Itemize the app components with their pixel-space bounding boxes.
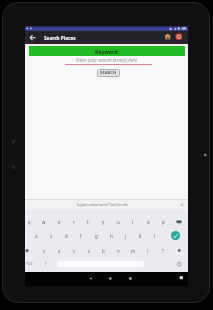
staticText: t xyxy=(87,219,89,225)
staticText: a xyxy=(35,233,38,239)
staticText: / xyxy=(45,261,47,267)
staticText: ? xyxy=(162,248,164,254)
button[interactable] xyxy=(104,273,116,285)
staticText: v xyxy=(88,248,91,254)
staticText: l xyxy=(154,233,156,239)
button[interactable] xyxy=(29,46,185,56)
staticText: j xyxy=(125,233,127,239)
button[interactable] xyxy=(25,31,188,44)
button[interactable] xyxy=(176,273,186,283)
staticText: g xyxy=(95,233,98,239)
staticText: p xyxy=(162,219,165,225)
staticText: k xyxy=(139,233,142,239)
staticText: h xyxy=(110,233,113,239)
staticText: c xyxy=(73,248,76,254)
staticText: SEARCH xyxy=(100,70,117,76)
staticText: d xyxy=(65,233,68,239)
staticText: Keyword: xyxy=(95,48,120,55)
staticText: z xyxy=(43,248,46,254)
button[interactable] xyxy=(27,32,38,43)
staticText: . xyxy=(153,260,155,266)
button[interactable] xyxy=(163,32,172,41)
staticText: n xyxy=(117,248,120,254)
staticText: Suggest contact names? Touch for info. xyxy=(77,203,129,207)
staticText: w xyxy=(42,219,46,225)
button[interactable]: SEARCH xyxy=(97,69,120,77)
staticText: ?123 xyxy=(26,262,33,266)
button[interactable] xyxy=(25,210,188,273)
button[interactable] xyxy=(25,200,188,210)
staticText: m xyxy=(131,248,136,254)
button[interactable] xyxy=(84,273,96,285)
button[interactable] xyxy=(124,273,136,285)
staticText: i xyxy=(132,219,134,225)
staticText: e xyxy=(58,219,61,225)
button[interactable] xyxy=(171,231,180,240)
staticText: b xyxy=(102,248,105,254)
staticText: f xyxy=(80,233,82,239)
staticText: s xyxy=(50,233,53,239)
staticText: r xyxy=(73,219,75,225)
staticText: Search Places xyxy=(44,35,76,41)
staticText: u xyxy=(117,219,120,225)
staticText: x xyxy=(58,248,61,254)
staticText: Enter your search term(s) here xyxy=(76,57,138,63)
staticText: o xyxy=(147,219,150,225)
staticText: y xyxy=(102,219,105,225)
button[interactable] xyxy=(174,32,183,41)
staticText: ! xyxy=(147,248,149,254)
staticText: q xyxy=(28,219,31,225)
